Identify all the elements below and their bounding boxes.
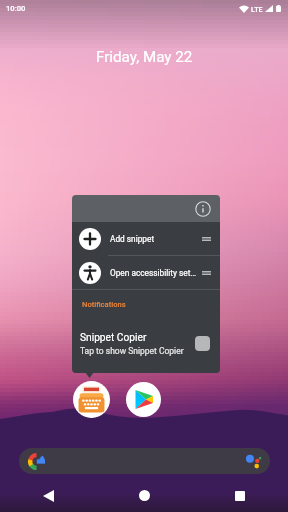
button[interactable]: Home: [96, 479, 192, 512]
button[interactable]: Snippet Copier: [73, 381, 110, 418]
staticText: Open accessibility set…: [110, 268, 199, 278]
button[interactable]: [19, 448, 270, 474]
staticText: Add snippet: [110, 234, 199, 244]
staticText: Notifications: [82, 300, 126, 309]
staticText: Tap to show Snippet Copier: [80, 346, 184, 356]
button[interactable]: Add snippet: [72, 222, 220, 255]
staticText: LTE: [251, 5, 263, 13]
staticText: Friday, May 22: [96, 48, 193, 66]
button[interactable]: Info: [195, 201, 211, 217]
button[interactable]: Recent apps: [192, 479, 288, 512]
button[interactable]: Play Store: [126, 382, 161, 417]
button[interactable]: Open accessibility set…: [72, 256, 220, 289]
staticText: Snippet Copier: [80, 332, 147, 344]
button[interactable]: Snippet Copier: [72, 314, 220, 373]
button[interactable]: Back: [0, 479, 96, 512]
staticText: 10:00: [6, 4, 26, 13]
